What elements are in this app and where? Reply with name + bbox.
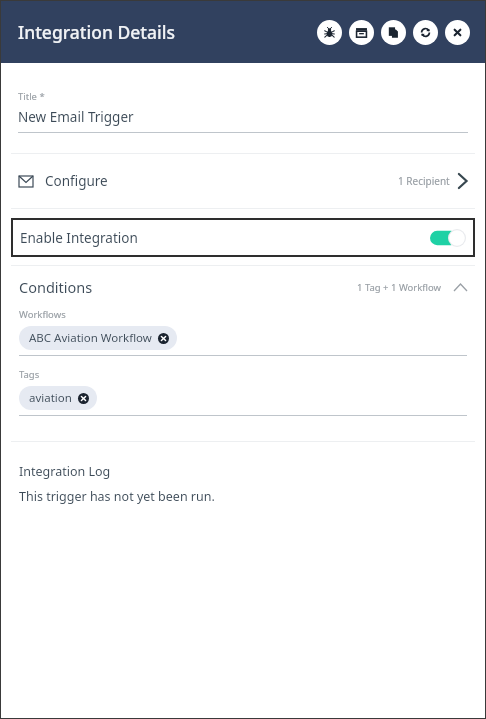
staticText: ABC Aviation Workflow — [29, 330, 152, 346]
staticText: 1 Tag + 1 Workflow — [357, 281, 442, 294]
button[interactable]: Conditions — [1, 266, 485, 308]
button[interactable]: Close — [445, 20, 470, 45]
button[interactable]: Remove aviation — [78, 393, 89, 404]
staticText: Tags — [19, 368, 40, 381]
button[interactable]: Duplicate — [381, 20, 406, 45]
staticText: New Email Trigger — [18, 108, 134, 126]
button[interactable]: Debug — [317, 20, 342, 45]
button[interactable]: Remove ABC Aviation Workflow — [158, 333, 169, 344]
staticText: Integration Details — [18, 20, 175, 44]
staticText: Enable Integration — [20, 229, 138, 247]
button[interactable]: Refresh — [413, 20, 438, 45]
staticText: Integration Log — [19, 463, 111, 480]
button[interactable]: Enable Integration — [11, 218, 475, 257]
staticText: Title * — [18, 90, 45, 103]
staticText: aviation — [29, 390, 72, 406]
staticText: Conditions — [19, 277, 93, 297]
button[interactable]: Configure — [1, 154, 485, 208]
staticText: Workflows — [19, 308, 66, 321]
staticText: This trigger has not yet been run. — [19, 488, 215, 505]
button[interactable]: ABC Aviation Workflow — [19, 326, 177, 350]
staticText: 1 Recipient — [398, 174, 450, 188]
staticText: Configure — [45, 172, 108, 190]
button[interactable]: Archive — [349, 20, 374, 45]
button[interactable]: Enable Integration toggle — [430, 229, 466, 247]
button[interactable]: aviation — [19, 386, 97, 410]
